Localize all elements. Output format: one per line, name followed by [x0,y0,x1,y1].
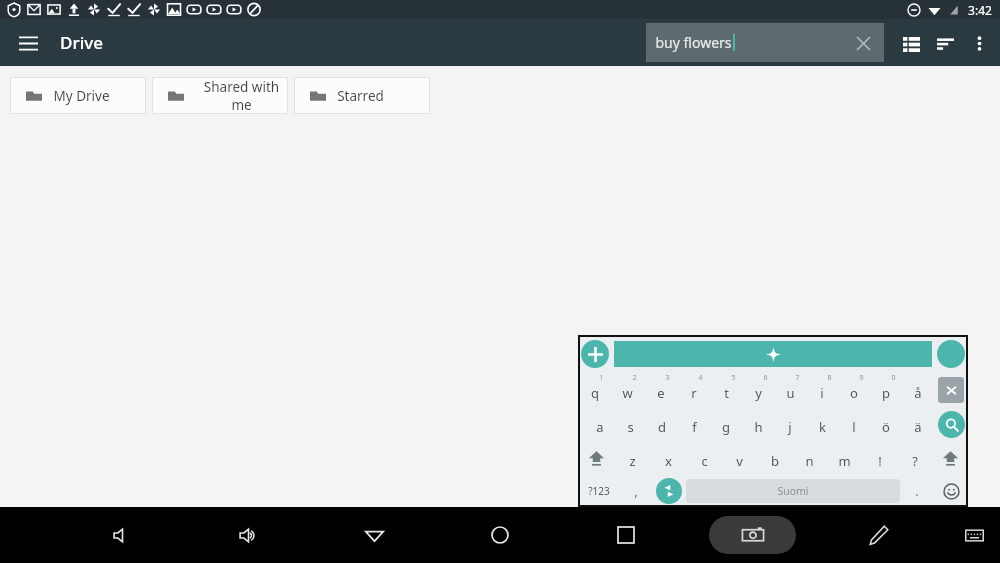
button[interactable]: m [827,441,862,475]
button[interactable]: a [584,407,615,441]
staticText: Drive [60,31,103,54]
staticText: m [838,452,851,470]
staticText: 0 [891,373,896,383]
button[interactable]: Keyboard [954,515,994,555]
staticText: 8 [827,373,832,383]
button[interactable]: Starred [294,77,430,114]
button[interactable]: , [620,475,652,507]
button[interactable]: Volume up [226,513,270,557]
button[interactable]: 9 [838,373,870,407]
staticText: ?123 [588,484,610,498]
staticText: My Drive [53,87,110,105]
button[interactable]: d [646,407,678,441]
button[interactable]: 8 [806,373,838,407]
button[interactable]: Switch to list view [894,26,928,60]
staticText: . [915,483,919,499]
button[interactable]: Shift [578,441,614,475]
staticText: å [914,384,922,402]
button[interactable]: ?123 [578,475,620,507]
staticText: z [629,452,636,470]
button[interactable]: Shared with me [152,77,288,114]
button[interactable]: Cursor control [656,478,682,504]
button[interactable]: h [742,407,774,441]
button[interactable]: Back [352,513,396,557]
button[interactable]: j [774,407,806,441]
button[interactable]: z [614,441,650,475]
button[interactable]: 1 [578,373,611,407]
button[interactable]: Shift [932,441,968,475]
staticText: g [722,418,730,436]
button[interactable]: Home [478,513,522,557]
staticText: o [850,384,858,402]
button[interactable]: Clear search [850,30,876,56]
staticText: 3:42 [968,2,992,18]
button[interactable]: l [838,407,870,441]
button[interactable]: ö [870,407,902,441]
button[interactable]: Volume down [100,513,144,557]
staticText: ä [914,418,922,436]
staticText: ? [912,452,918,470]
button[interactable]: Backspace [938,377,964,403]
button[interactable]: Voice input [937,340,965,368]
button[interactable]: Screenshot [709,516,796,554]
staticText: t [724,384,729,402]
button[interactable]: 7 [774,373,806,407]
button[interactable]: 0 [870,373,902,407]
button[interactable]: . [900,475,934,507]
staticText: , [634,483,638,499]
button[interactable]: Add [581,340,609,368]
button[interactable]: b [757,441,792,475]
staticText: j [788,418,792,436]
button[interactable]: å [902,373,934,407]
button[interactable]: Sort [928,26,962,60]
button[interactable]: ä [902,407,934,441]
button[interactable]: More options [962,26,996,60]
button[interactable]: Emoji [934,475,968,507]
button[interactable]: s [615,407,646,441]
button[interactable]: Suggestion [614,341,932,367]
staticText: 9 [859,373,864,383]
button[interactable]: Recent apps [604,513,648,557]
button[interactable]: 3 [644,373,677,407]
staticText: p [882,384,890,402]
staticText: x [665,452,672,470]
staticText: n [805,452,814,470]
button[interactable]: My Drive [10,77,146,114]
staticText: k [819,418,826,436]
staticText: q [591,384,599,402]
button[interactable]: n [792,441,827,475]
button[interactable]: ? [897,441,932,475]
staticText: a [596,418,604,436]
staticText: Shared with me [195,78,288,114]
staticText: 7 [795,373,800,383]
staticText: 1 [599,373,604,383]
staticText: 2 [632,373,637,383]
button[interactable]: buy flowers [646,23,884,62]
button[interactable]: c [686,441,722,475]
button[interactable]: g [710,407,742,441]
button[interactable]: f [678,407,710,441]
staticText: Starred [337,87,384,105]
staticText: b [771,452,779,470]
button[interactable]: Open navigation drawer [10,25,46,61]
staticText: 4 [698,373,703,383]
staticText: w [622,384,633,402]
button[interactable]: 4 [677,373,710,407]
button[interactable]: Stylus [857,513,901,557]
staticText: 3 [665,373,670,383]
staticText: Suomi [777,484,809,498]
button[interactable]: k [806,407,838,441]
staticText: l [852,418,856,436]
button[interactable]: 5 [710,373,742,407]
button[interactable]: Suomi [686,479,900,503]
button[interactable]: x [650,441,686,475]
staticText: d [658,418,666,436]
button[interactable]: ! [862,441,897,475]
button[interactable]: v [722,441,757,475]
button[interactable]: 6 [742,373,774,407]
staticText: y [755,384,762,402]
button[interactable]: Search [938,411,965,438]
staticText: buy flowers [655,33,732,52]
staticText: c [701,452,708,470]
button[interactable]: 2 [611,373,644,407]
